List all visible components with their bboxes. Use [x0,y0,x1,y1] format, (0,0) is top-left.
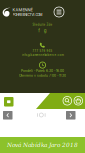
button[interactable]: Next [66,111,75,119]
staticText: Pondělí - Pátek 6.30 - 16.00 [21,69,64,73]
button[interactable]: Google [44,28,47,33]
staticText: 777 576 945 [32,49,52,53]
staticText: Otevřeno v sobotu 7:00 - 11:30 [19,74,66,78]
button[interactable]: Play slideshow [4,97,13,106]
button[interactable]: Basket [74,96,83,105]
staticText: Nová Nabídka Jaro 2018 [7,142,78,148]
button[interactable]: Menu [54,7,64,17]
button[interactable]: Search [63,96,72,105]
staticText: g [44,28,47,33]
staticText: info@kamennekoberce.com [21,53,63,57]
staticText: KAMENNÉ [13,7,33,12]
staticText: Sledujte Zde [32,23,52,26]
button[interactable]: Previous [3,111,12,119]
button[interactable]: Facebook [38,28,40,33]
staticText: f [38,28,40,33]
staticText: POHREBNICTVI.COM [13,13,43,17]
